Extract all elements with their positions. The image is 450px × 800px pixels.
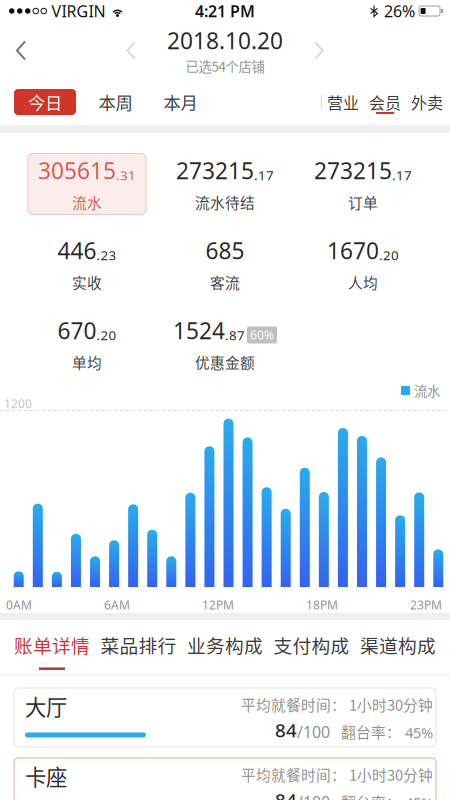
staticText: 已选54个店铺: [185, 56, 264, 76]
staticText: 273215: [176, 155, 254, 185]
staticText: 流水待结: [195, 191, 255, 213]
staticText: .23: [96, 246, 116, 264]
staticText: 0AM: [6, 597, 32, 613]
staticText: 翻台率：: [341, 791, 401, 800]
button[interactable]: 菜品排行: [100, 625, 176, 670]
staticText: .87: [225, 326, 245, 344]
button[interactable]: 渠道构成: [360, 625, 436, 670]
staticText: 人均: [348, 271, 378, 293]
staticText: 外卖: [411, 90, 443, 114]
staticText: 12PM: [202, 597, 234, 613]
staticText: 84: [275, 717, 297, 742]
staticText: .20: [96, 326, 116, 344]
staticText: 平均就餐时间： 1小时30分钟: [241, 764, 433, 785]
staticText: 45%: [405, 723, 433, 742]
staticText: 45%: [405, 793, 433, 800]
staticText: 支付构成: [273, 631, 349, 658]
button[interactable]: 支付构成: [273, 625, 349, 670]
button[interactable]: 本周: [83, 87, 148, 117]
staticText: 会员: [369, 90, 401, 114]
staticText: 本月: [163, 89, 197, 115]
button[interactable]: Back: [0, 22, 42, 79]
staticText: 业务构成: [187, 631, 263, 658]
staticText: 84: [275, 787, 297, 800]
button[interactable]: Previous day: [110, 22, 152, 79]
staticText: 305615: [38, 155, 116, 185]
staticText: 273215: [314, 155, 392, 185]
staticText: 685: [205, 235, 244, 265]
button[interactable]: 业务构成: [187, 625, 263, 670]
staticText: 今日: [28, 89, 62, 115]
staticText: /100: [297, 791, 330, 800]
staticText: 60%: [250, 327, 274, 343]
staticText: 1670: [327, 235, 379, 265]
button[interactable]: 会员: [364, 85, 406, 119]
staticText: 本周: [98, 89, 132, 115]
button[interactable]: 446: [18, 224, 156, 304]
staticText: 23PM: [410, 597, 442, 613]
staticText: 实收: [72, 271, 102, 293]
staticText: .17: [254, 166, 274, 184]
staticText: 446: [57, 235, 96, 265]
staticText: 优惠金额: [195, 351, 255, 373]
staticText: 2018.10.20: [167, 25, 283, 55]
staticText: .17: [392, 166, 412, 184]
button[interactable]: 1524: [156, 304, 294, 384]
staticText: 营业: [327, 90, 359, 114]
staticText: 单均: [72, 351, 102, 373]
staticText: 订单: [348, 191, 378, 213]
staticText: 卡座: [25, 760, 67, 791]
button[interactable]: 本月: [148, 87, 213, 117]
staticText: .20: [379, 246, 399, 264]
button[interactable]: 今日: [14, 89, 76, 115]
button[interactable]: Next day: [298, 22, 340, 79]
button[interactable]: 670: [18, 304, 156, 384]
button[interactable]: 账单详情: [14, 625, 90, 670]
staticText: 渠道构成: [360, 631, 436, 658]
button[interactable]: 273215: [294, 144, 432, 224]
button[interactable]: 685: [156, 224, 294, 304]
button[interactable]: 营业: [322, 85, 364, 119]
button[interactable]: 外卖: [406, 85, 448, 119]
staticText: 1524: [173, 315, 225, 345]
staticText: /100: [297, 721, 330, 742]
staticText: 大厅: [25, 690, 67, 721]
button[interactable]: 大厅: [14, 688, 436, 747]
staticText: 流水: [414, 381, 440, 400]
staticText: 4:21 PM: [195, 0, 255, 22]
button[interactable]: 卡座: [14, 758, 436, 800]
staticText: 18PM: [306, 597, 338, 613]
staticText: 流水: [72, 191, 102, 213]
staticText: 26%: [384, 0, 415, 22]
staticText: 1200: [4, 395, 32, 411]
button[interactable]: 273215: [156, 144, 294, 224]
staticText: 菜品排行: [100, 631, 176, 658]
button[interactable]: 305615: [18, 144, 156, 224]
staticText: 客流: [210, 271, 240, 293]
staticText: VIRGIN: [51, 0, 105, 22]
button[interactable]: 1670: [294, 224, 432, 304]
staticText: 6AM: [104, 597, 130, 613]
staticText: 账单详情: [14, 631, 90, 658]
staticText: .31: [116, 166, 136, 184]
staticText: 平均就餐时间： 1小时30分钟: [241, 694, 433, 715]
staticText: 670: [57, 315, 96, 345]
staticText: 翻台率：: [341, 721, 401, 742]
